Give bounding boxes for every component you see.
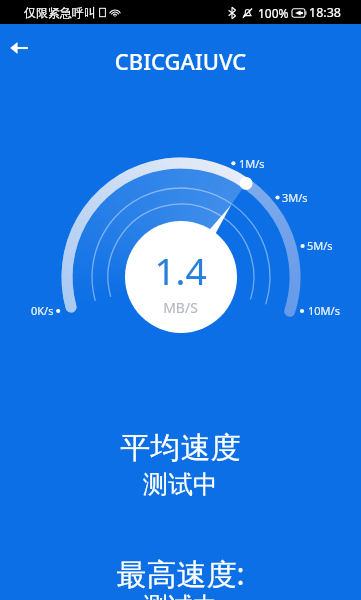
staticText: 仅限紧急呼叫 bbox=[24, 5, 96, 20]
staticText: CBICGAIUVC bbox=[0, 46, 361, 76]
staticText: 测试中 bbox=[0, 469, 361, 500]
staticText: 1M/s bbox=[239, 156, 265, 171]
staticText: 5M/s bbox=[307, 238, 333, 253]
staticText: MB/S bbox=[0, 298, 361, 317]
staticText: 最高速度: bbox=[0, 553, 361, 594]
staticText: 0K/s bbox=[31, 303, 54, 318]
staticText: 1.4 bbox=[0, 245, 361, 295]
staticText: 测试中 bbox=[0, 591, 361, 600]
staticText: 3M/s bbox=[282, 190, 308, 205]
staticText: 100% bbox=[258, 5, 289, 21]
staticText: 10M/s bbox=[308, 303, 340, 318]
staticText: 18:38 bbox=[309, 4, 341, 21]
button[interactable]: Back bbox=[0, 29, 38, 67]
staticText: 平均速度 bbox=[0, 429, 361, 467]
